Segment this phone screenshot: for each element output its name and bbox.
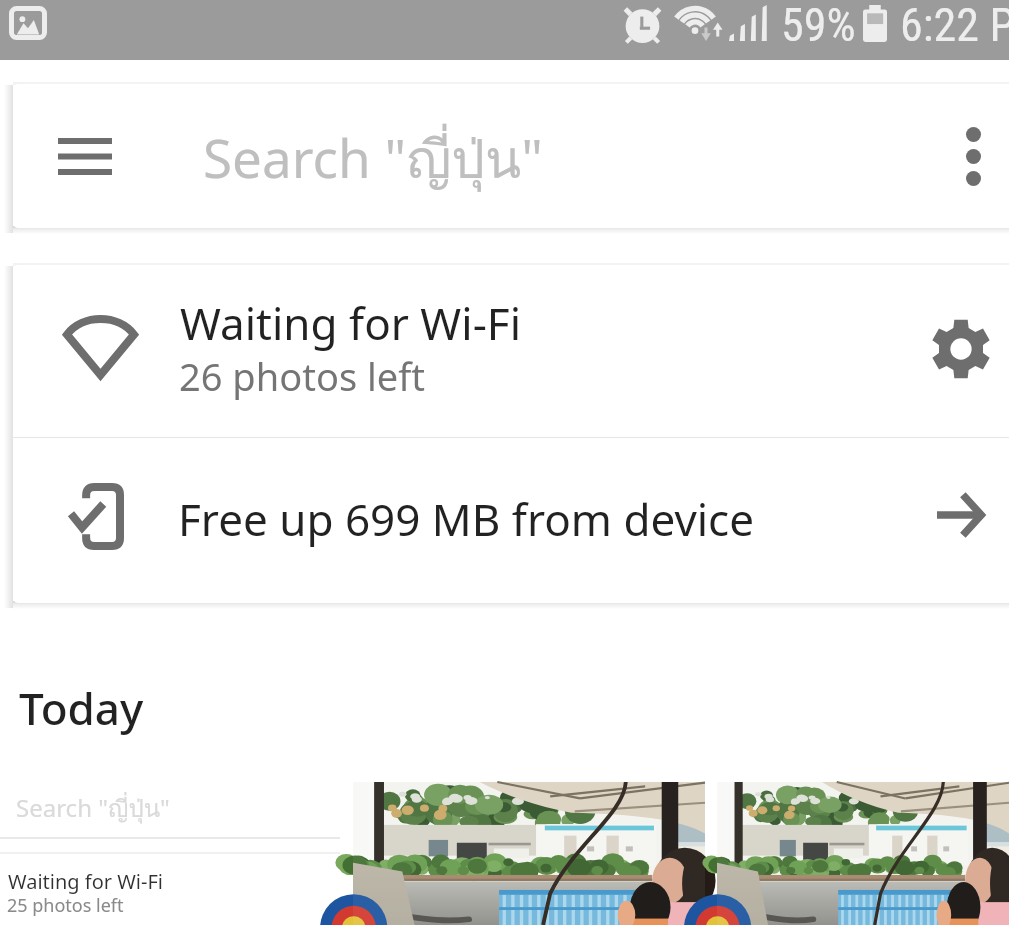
staticText: Waiting for Wi-Fi [8, 868, 163, 895]
other: Menu [58, 138, 112, 175]
staticText: Today [19, 678, 144, 738]
other: Free up space [937, 491, 985, 539]
staticText: Waiting for Wi-Fi [180, 293, 521, 353]
staticText: 25 photos left [7, 893, 124, 918]
other: More options [966, 127, 981, 186]
button[interactable] [353, 782, 705, 925]
staticText: Search "ญี่ปุ่น" [16, 789, 170, 827]
staticText: Search "ญี่ปุ่น" [203, 117, 543, 201]
other: Settings [931, 319, 991, 379]
button[interactable] [717, 782, 1009, 925]
staticText: 26 photos left [179, 350, 426, 402]
staticText: 6:22 PM [900, 0, 1009, 52]
button[interactable]: Waiting for Wi-Fi [13, 265, 1009, 437]
button[interactable]: Free up 699 MB from device [13, 438, 1009, 603]
staticText: 59% [781, 0, 856, 52]
button[interactable]: Menu [13, 84, 1009, 228]
staticText: Free up 699 MB from device [178, 489, 755, 549]
button[interactable]: Search "ญี่ปุ่น" [0, 782, 353, 925]
